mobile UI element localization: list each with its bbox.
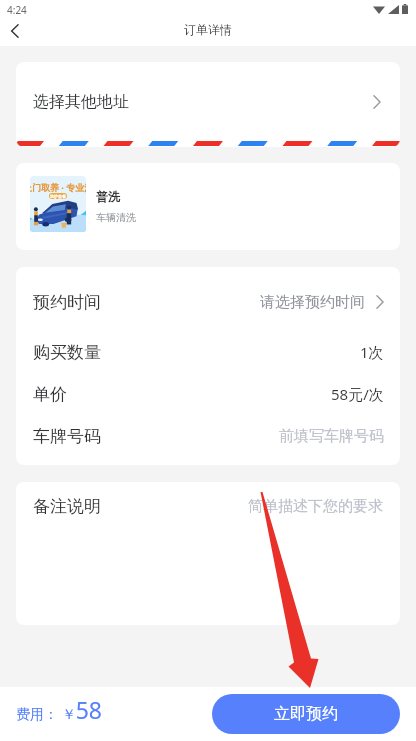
staticText: 简单描述下您的要求	[248, 497, 383, 516]
staticText: 单价	[33, 384, 67, 405]
staticText: 车辆清洗	[96, 211, 136, 224]
staticText: 订单详情	[184, 22, 232, 37]
staticText: 购买数量	[33, 342, 101, 363]
staticText: 58元/次	[331, 384, 384, 404]
button[interactable]: 单价	[16, 373, 400, 415]
staticText: 前填写车牌号码	[279, 427, 384, 446]
staticText: 备注说明	[33, 496, 101, 517]
staticText: 请选择预约时间	[260, 293, 365, 312]
staticText: 1次	[360, 342, 384, 362]
button[interactable]: 备注说明	[16, 482, 400, 625]
staticText: 普洗	[96, 189, 120, 204]
button[interactable]: 预约时间	[16, 281, 400, 323]
staticText: 上门取养 · 专业派	[30, 181, 86, 193]
staticText: 选择其他地址	[33, 92, 129, 112]
button[interactable]: 上门取养 · 专业派	[16, 163, 400, 250]
button[interactable]: Back	[0, 16, 30, 46]
staticText: 预约时间	[33, 292, 101, 313]
staticText: 4:24	[7, 3, 27, 17]
button[interactable]: 购买数量	[16, 331, 400, 373]
staticText: 立即预约	[274, 704, 338, 724]
staticText: 车牌号码	[33, 426, 101, 447]
staticText: 费用： ￥58	[16, 694, 102, 725]
button[interactable]: 车牌号码	[16, 415, 400, 458]
staticText: 洗护套餐	[50, 194, 66, 199]
button[interactable]: 选择其他地址	[16, 62, 400, 141]
button[interactable]: 立即预约	[212, 694, 400, 734]
